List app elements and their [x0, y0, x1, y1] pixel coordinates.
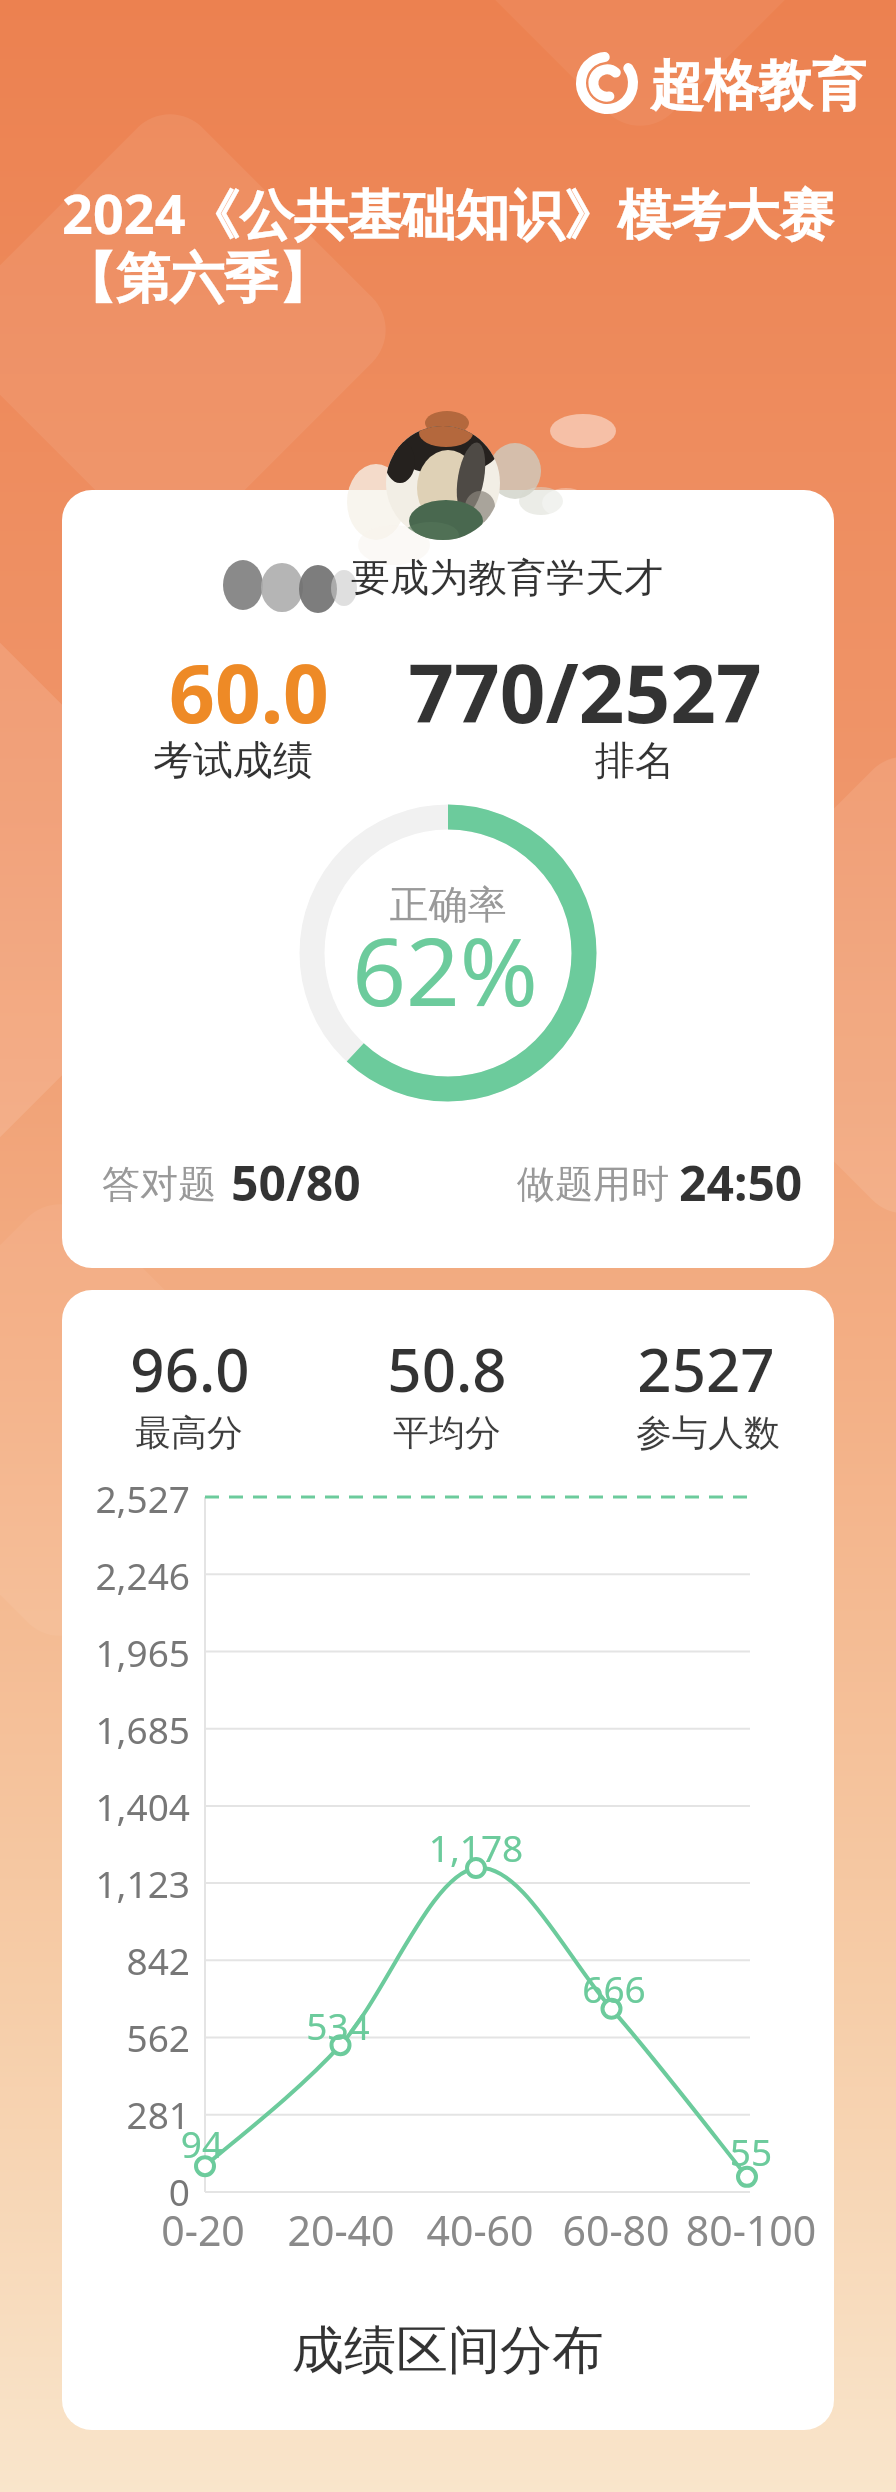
staticText: 1,123	[60, 1858, 190, 1908]
staticText: 2527	[581, 1328, 831, 1410]
staticText: 1,685	[60, 1704, 190, 1754]
staticText: 666	[544, 1963, 684, 2013]
staticText: 正确率	[298, 880, 598, 929]
staticText: 94	[152, 2118, 252, 2168]
staticText: 55	[701, 2126, 801, 2176]
staticText: 1,178	[391, 1822, 561, 1872]
staticText: 24:50	[679, 1150, 803, 1215]
staticText: 成绩区间分布	[198, 2318, 698, 2384]
staticText: 2,246	[60, 1550, 190, 1600]
staticText: 2024《公共基础知识》模考大赛 【第六季】	[62, 176, 834, 313]
staticText: 562	[60, 2012, 190, 2062]
button[interactable]	[62, 1290, 834, 2430]
staticText: 0	[60, 2166, 190, 2216]
staticText: 最高分	[64, 1410, 314, 1455]
staticText: 534	[268, 2000, 408, 2050]
staticText: 平均分	[322, 1410, 572, 1455]
staticText: 40-60	[390, 2202, 570, 2258]
staticText: 60-80	[526, 2202, 706, 2258]
staticText: 0-20	[113, 2202, 293, 2258]
staticText: 超格教育	[638, 52, 878, 120]
staticText: 842	[60, 1935, 190, 1985]
staticText: 1,404	[60, 1781, 190, 1831]
staticText: 50.8	[322, 1328, 572, 1410]
staticText: 要成为教育学天才	[351, 553, 663, 602]
staticText: 60.0	[99, 637, 399, 746]
staticText: 1,965	[60, 1627, 190, 1677]
staticText: 答对题	[102, 1160, 216, 1208]
staticText: 考试成绩	[83, 735, 383, 785]
staticText: 96.0	[65, 1328, 315, 1410]
staticText: 770/2527	[375, 637, 795, 746]
staticText: 做题用时	[517, 1160, 669, 1208]
staticText: 281	[60, 2089, 190, 2139]
staticText: 80-100	[661, 2202, 841, 2258]
button[interactable]	[62, 490, 834, 1268]
staticText: 2,527	[60, 1473, 190, 1523]
staticText: 排名	[535, 735, 735, 785]
staticText: 参与人数	[583, 1410, 833, 1455]
staticText: 62%	[245, 906, 645, 1034]
staticText: 20-40	[251, 2202, 431, 2258]
staticText: 50/80	[231, 1150, 361, 1215]
